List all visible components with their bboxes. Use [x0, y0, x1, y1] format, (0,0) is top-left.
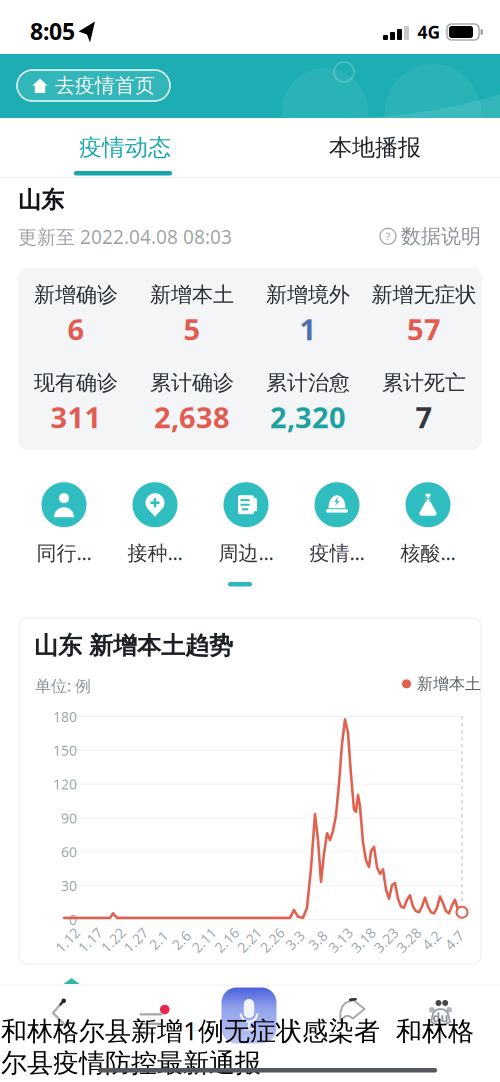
staticText: 3.23: [372, 931, 400, 949]
staticText: H: [424, 492, 431, 504]
staticText: 120: [53, 775, 77, 793]
staticText: 单位: 例: [35, 675, 91, 696]
staticText: 同行...: [36, 539, 91, 566]
staticText: 累计治愈: [266, 370, 350, 396]
button[interactable]: 周边...: [201, 476, 291, 572]
staticText: 山东 新增本土趋势: [34, 631, 233, 660]
staticText: 2.6: [171, 931, 191, 949]
button[interactable]: Voice search: [221, 987, 276, 1043]
staticText: 1.27: [122, 931, 150, 949]
staticText: 数据说明: [401, 224, 481, 249]
button[interactable]: Share: [338, 998, 366, 1024]
staticText: 311: [50, 398, 101, 436]
staticText: 3.3: [285, 931, 305, 949]
staticText: 和林格尔县新增1例无症状感染者 和林格: [1, 1013, 474, 1047]
staticText: 更新至 2022.04.08 08:03: [18, 224, 232, 249]
staticText: 新增确诊: [34, 282, 118, 308]
button[interactable]: 疫情动态: [0, 118, 250, 177]
button[interactable]: Baidu: [429, 1000, 452, 1026]
staticText: 0: [69, 910, 77, 929]
staticText: 8:05: [30, 16, 75, 46]
staticText: 2.11: [190, 931, 218, 949]
button[interactable]: ?: [380, 224, 481, 249]
staticText: 新增本土: [150, 282, 234, 308]
staticText: 尔县疫情防控最新通报: [1, 1047, 261, 1079]
button[interactable]: 去疫情首页: [17, 70, 170, 101]
staticText: 疫情...: [309, 539, 364, 566]
staticText: 2,320: [270, 398, 346, 436]
staticText: 30: [61, 876, 77, 895]
button[interactable]: 本地播报: [250, 118, 500, 177]
staticText: 去疫情首页: [55, 73, 155, 98]
button[interactable]: 疫情...: [292, 476, 382, 572]
staticText: 核酸...: [400, 539, 455, 566]
staticText: 57: [407, 310, 441, 348]
staticText: 3.13: [326, 931, 354, 949]
staticText: 新增本土: [417, 674, 481, 694]
staticText: 1.12: [53, 931, 81, 949]
staticText: 现有确诊: [34, 370, 118, 396]
button[interactable]: 接种...: [110, 476, 200, 572]
staticText: du: [432, 1009, 448, 1025]
staticText: 1: [299, 310, 316, 348]
button[interactable]: Menu: [136, 993, 166, 1024]
staticText: 接种...: [127, 539, 182, 566]
staticText: 90: [61, 809, 77, 827]
staticText: 3.8: [308, 931, 328, 949]
staticText: 4G: [417, 20, 440, 44]
staticText: 7: [415, 398, 432, 436]
button[interactable]: Back: [50, 998, 70, 1028]
staticText: 山东: [18, 186, 64, 214]
button[interactable]: 同行...: [19, 476, 109, 572]
staticText: 150: [53, 741, 77, 760]
staticText: 1.17: [76, 931, 104, 949]
staticText: 180: [53, 707, 77, 726]
staticText: 本地播报: [329, 133, 421, 162]
staticText: 2.1: [148, 931, 168, 949]
staticText: 周边...: [218, 539, 273, 566]
staticText: 2.16: [213, 931, 241, 949]
staticText: 2.26: [258, 931, 286, 949]
staticText: 5: [183, 310, 200, 348]
staticText: 4.7: [444, 931, 464, 949]
staticText: 新增无症状: [371, 282, 476, 308]
staticText: 新增境外: [266, 282, 350, 308]
staticText: 60: [61, 842, 77, 861]
staticText: 2.21: [235, 931, 263, 949]
staticText: 6: [67, 310, 84, 348]
staticText: ?: [385, 229, 390, 244]
staticText: 4.2: [421, 931, 441, 949]
staticText: 3.18: [349, 931, 377, 949]
staticText: 1.22: [99, 931, 127, 949]
staticText: 疫情动态: [79, 133, 171, 162]
staticText: 累计死亡: [382, 370, 466, 396]
button[interactable]: H: [383, 476, 473, 572]
staticText: 累计确诊: [150, 370, 234, 396]
staticText: 2,638: [154, 398, 230, 436]
staticText: 3.28: [395, 931, 423, 949]
